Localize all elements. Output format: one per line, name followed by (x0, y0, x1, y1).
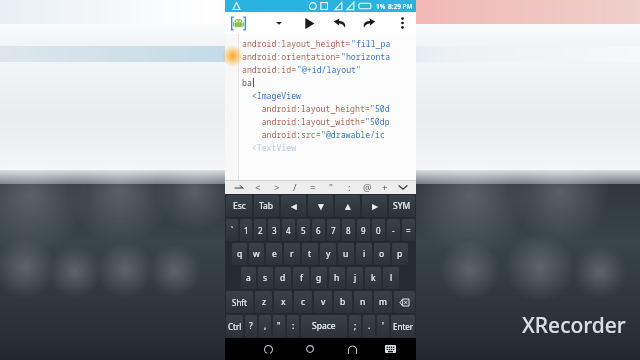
button[interactable]: : (340, 180, 358, 194)
button[interactable]: d (275, 267, 291, 289)
button[interactable]: Hide keyboard (373, 338, 408, 360)
staticText: 3 (272, 225, 277, 236)
button[interactable]: n (354, 291, 372, 313)
button[interactable]: 2 (254, 219, 266, 241)
staticText: android:layout_width= (242, 116, 365, 127)
staticText: ▶ (372, 202, 378, 211)
button[interactable]: Recents (331, 338, 373, 360)
staticText: "50dp (365, 116, 390, 127)
staticText: 4 (286, 225, 291, 236)
button[interactable]: 9 (357, 219, 370, 241)
staticText: : (292, 320, 295, 332)
button[interactable]: Tab (229, 180, 248, 194)
button[interactable]: 4 (282, 219, 295, 241)
button[interactable]: 7 (327, 219, 340, 241)
button[interactable]: e (266, 243, 282, 265)
button[interactable]: Enter (391, 315, 415, 337)
button[interactable]: w (249, 243, 264, 265)
staticText: <ImageView (242, 90, 301, 101)
button[interactable]: a (241, 267, 256, 289)
button[interactable]: Arrow ◀ (281, 195, 306, 217)
button[interactable]: " (273, 315, 285, 337)
button[interactable]: l (383, 267, 399, 289)
button[interactable]: 8 (342, 219, 355, 241)
button[interactable]: b (334, 291, 352, 313)
button[interactable]: r (284, 243, 300, 265)
button[interactable]: y (320, 243, 336, 265)
button[interactable]: p (392, 243, 408, 265)
button[interactable]: h (329, 267, 345, 289)
staticText: 0 (376, 225, 381, 236)
button[interactable]: Space (301, 315, 347, 337)
button[interactable]: " (322, 180, 340, 194)
staticText: " (277, 320, 281, 332)
button[interactable]: i (356, 243, 372, 265)
button[interactable]: t (302, 243, 318, 265)
button[interactable]: q (232, 243, 247, 265)
button[interactable]: Arrow ▲ (335, 195, 360, 217)
button[interactable]: Tab (254, 195, 279, 217)
button[interactable]: Home (289, 338, 331, 360)
button[interactable]: ` (226, 219, 238, 241)
button[interactable]: Esc (226, 195, 252, 217)
staticText: android:orientation= (242, 51, 341, 62)
button[interactable]: 3 (268, 219, 280, 241)
button[interactable]: ? (245, 315, 257, 337)
button[interactable]: u (338, 243, 354, 265)
button[interactable]: = (304, 180, 322, 194)
staticText: 8 (346, 225, 351, 236)
button[interactable]: Collapse (394, 180, 412, 194)
button[interactable]: Arrow ▼ (308, 195, 333, 217)
button[interactable]: z (255, 291, 272, 313)
button[interactable]: - (387, 219, 400, 241)
button[interactable]: @ (358, 180, 376, 194)
staticText: j (354, 272, 357, 284)
button[interactable]: v (314, 291, 332, 313)
staticText: android:id= (242, 64, 297, 75)
button[interactable]: ; (349, 315, 361, 337)
staticText: x (281, 296, 286, 308)
button[interactable]: Run (297, 12, 321, 34)
staticText: k (371, 272, 376, 284)
button[interactable]: Undo (327, 12, 351, 34)
button[interactable]: s (258, 267, 273, 289)
staticText: h (334, 272, 340, 284)
button[interactable]: 1 (240, 219, 252, 241)
staticText: v (321, 296, 326, 308)
button[interactable]: / (286, 180, 304, 194)
button[interactable]: c (294, 291, 312, 313)
button[interactable]: x (274, 291, 292, 313)
button[interactable]: . (363, 315, 375, 337)
button[interactable]: f (293, 267, 309, 289)
button[interactable]: 5 (297, 219, 310, 241)
staticText: > (274, 181, 280, 194)
button[interactable]: k (365, 267, 381, 289)
button[interactable]: SYM (389, 195, 415, 217)
button[interactable]: ' (377, 315, 389, 337)
staticText: i (363, 248, 366, 260)
button[interactable]: Back (247, 338, 289, 360)
button[interactable]: j (347, 267, 363, 289)
button[interactable]: + (376, 180, 394, 194)
button[interactable]: : (287, 315, 299, 337)
staticText: : (348, 181, 351, 194)
button[interactable]: o (374, 243, 390, 265)
button[interactable]: Ctrl (226, 315, 243, 337)
staticText: l (390, 272, 393, 284)
button[interactable]: Backspace (394, 291, 415, 313)
button[interactable]: g (311, 267, 327, 289)
button[interactable]: m (374, 291, 392, 313)
button[interactable]: More options (391, 12, 413, 34)
staticText: y (326, 248, 331, 260)
button[interactable]: > (267, 180, 286, 194)
button[interactable]: < (248, 180, 267, 194)
button[interactable]: 0 (372, 219, 385, 241)
button[interactable]: = (402, 219, 415, 241)
button[interactable]: , (259, 315, 271, 337)
button[interactable]: Redo (357, 12, 381, 34)
button[interactable]: 6 (312, 219, 325, 241)
button[interactable]: Shft (226, 291, 253, 313)
button[interactable]: App logo (225, 12, 251, 34)
button[interactable]: Dropdown (269, 13, 289, 33)
button[interactable]: Arrow ▶ (362, 195, 387, 217)
